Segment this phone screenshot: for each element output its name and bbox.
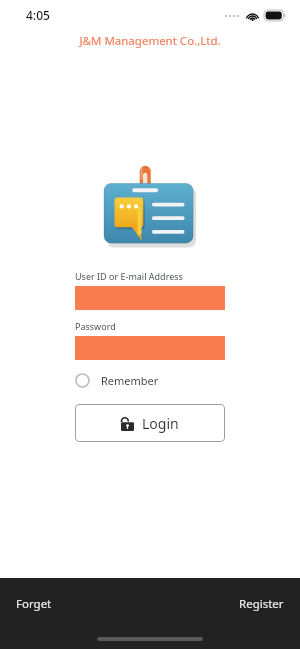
button[interactable]: Login — [75, 404, 225, 442]
button[interactable]: Remember — [75, 371, 159, 390]
staticText: J&M Management Co.,Ltd. — [79, 33, 221, 49]
staticText: Register — [239, 596, 284, 612]
staticText: 4:05 — [26, 7, 50, 23]
staticText: Password — [75, 320, 116, 332]
staticText: Login — [142, 414, 179, 433]
button[interactable]: Register — [223, 590, 300, 618]
staticText: User ID or E-mail Address — [75, 270, 183, 282]
button[interactable]: Forget — [0, 590, 68, 618]
staticText: Remember — [101, 373, 159, 388]
staticText: Forget — [16, 596, 52, 612]
